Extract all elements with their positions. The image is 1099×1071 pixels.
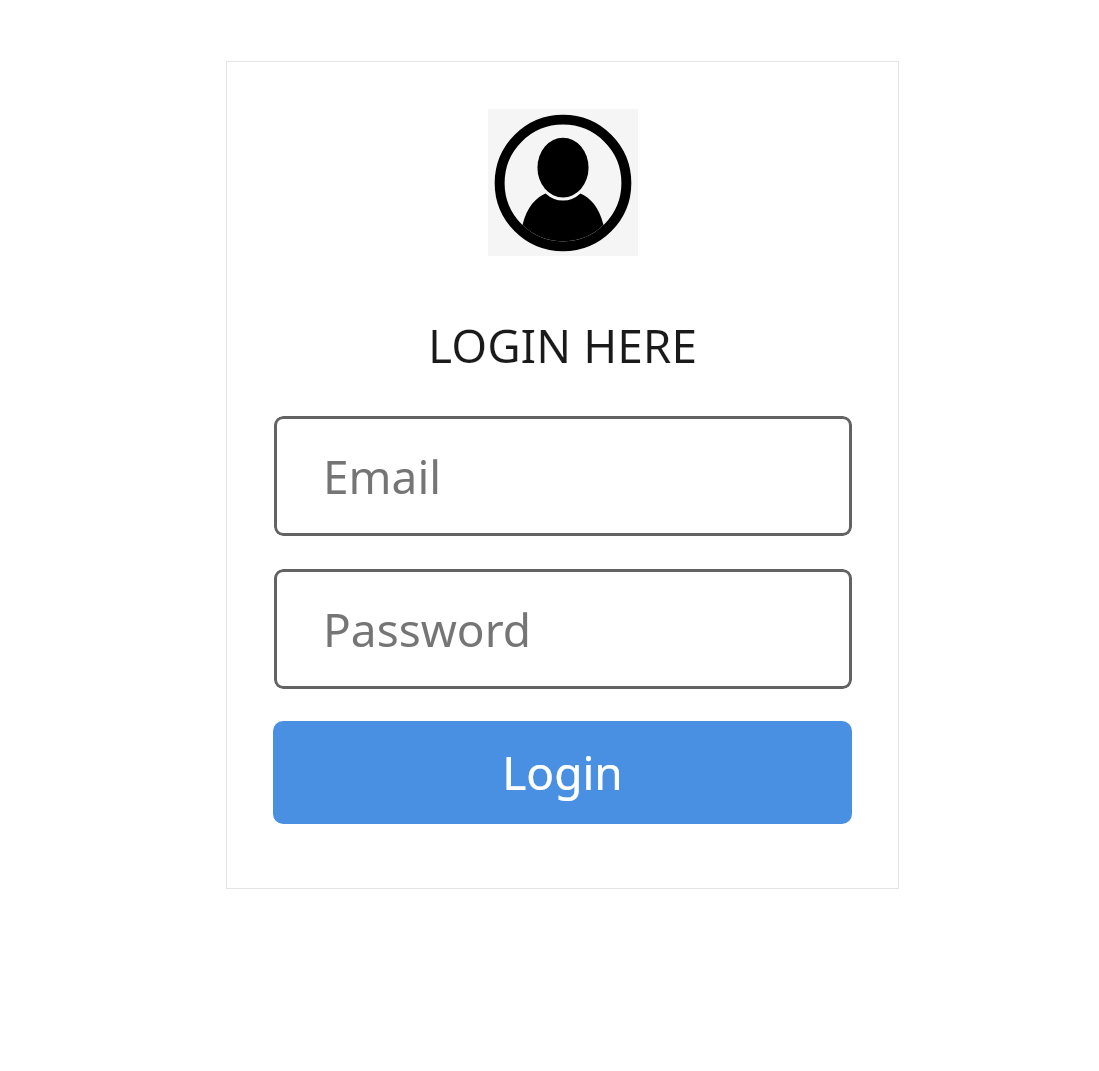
button[interactable]: Email xyxy=(274,416,852,536)
staticText: Password xyxy=(323,598,532,661)
staticText: Login xyxy=(502,741,623,804)
button[interactable]: Password xyxy=(274,569,852,689)
staticText: LOGIN HERE xyxy=(428,314,697,377)
other: User avatar xyxy=(490,110,636,256)
staticText: Email xyxy=(323,445,442,508)
button[interactable]: Login xyxy=(273,721,852,824)
